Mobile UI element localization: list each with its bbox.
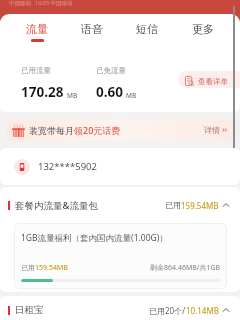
button[interactable]: 1GB流量福利（套内国内流量(1.00G)） — [14, 223, 227, 289]
staticText: 已用 — [165, 200, 181, 210]
staticText: 日租宝 — [15, 304, 44, 316]
staticText: 短信 — [136, 22, 158, 36]
staticText: 剩余864.46MB/共1GB — [150, 263, 221, 273]
button[interactable]: 短信 — [119, 14, 175, 42]
staticText: 已用20个/ — [149, 305, 186, 316]
staticText: 套餐内流量&流量包 — [15, 199, 99, 212]
staticText: 中国移动 — [9, 0, 31, 7]
staticText: MB — [126, 91, 137, 100]
staticText: 已用 — [21, 263, 35, 272]
staticText: 1GB流量福利（套内国内流量(1.00G)） — [21, 232, 168, 244]
staticText: 10.14MB — [186, 305, 219, 316]
staticText: 详情 — [204, 125, 220, 135]
staticText: 已用流量 — [21, 66, 51, 75]
staticText: 语音 — [81, 22, 103, 36]
button[interactable]: 语音 — [64, 14, 119, 42]
button[interactable]: 132****5902 — [0, 148, 240, 185]
staticText: 装宽带每月 — [29, 125, 74, 136]
button[interactable]: 流量 — [9, 14, 64, 42]
button[interactable]: 装宽带每月 — [7, 119, 233, 141]
button[interactable]: 日租宝 — [0, 303, 240, 317]
staticText: 159.54MB — [181, 200, 219, 211]
staticText: 流量 — [26, 22, 48, 36]
staticText: MB — [67, 91, 78, 100]
staticText: 已免流量 — [96, 66, 126, 75]
staticText: 更多 — [192, 22, 214, 36]
staticText: 132****5902 — [38, 160, 97, 173]
staticText: 领20元话费 — [74, 124, 121, 136]
staticText: 0.60 — [96, 83, 123, 101]
staticText: 170.28 — [21, 83, 64, 101]
button[interactable]: 更多 — [175, 14, 231, 42]
staticText: 查看详单 — [198, 77, 228, 86]
staticText: 10:05 中国移动 — [35, 0, 73, 7]
button[interactable]: 套餐内流量&流量包 — [0, 198, 240, 212]
staticText: 159.54MB — [35, 263, 68, 273]
button[interactable]: 查看详单 — [178, 71, 240, 88]
